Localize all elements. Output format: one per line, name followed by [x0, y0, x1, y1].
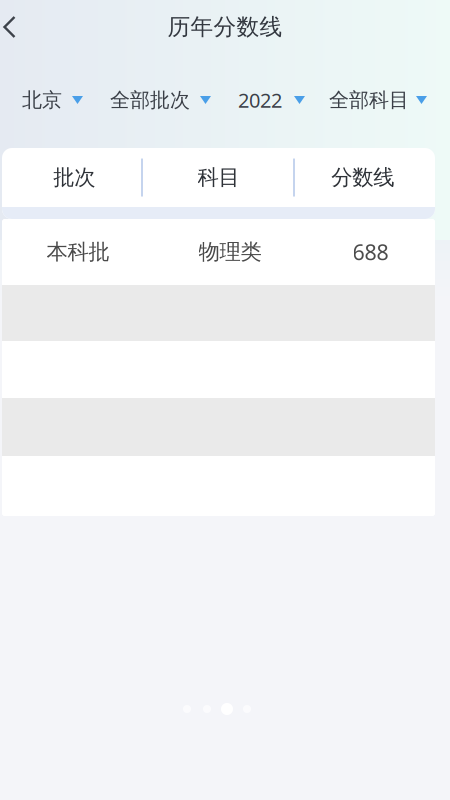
button[interactable]: 全部科目: [329, 78, 427, 122]
staticText: 全部批次: [110, 88, 190, 112]
button[interactable]: Back: [0, 0, 44, 54]
button[interactable]: 2022: [238, 78, 305, 122]
staticText: 科目: [197, 164, 239, 191]
staticText: 688: [352, 238, 388, 266]
button[interactable]: 全部批次: [110, 78, 211, 122]
button[interactable]: 北京: [22, 78, 83, 122]
staticText: 本科批: [46, 239, 109, 265]
staticText: 批次: [53, 164, 95, 191]
staticText: 历年分数线: [167, 13, 282, 41]
staticText: 全部科目: [329, 88, 409, 112]
staticText: 分数线: [331, 164, 394, 191]
staticText: 北京: [22, 88, 62, 112]
staticText: 2022: [238, 87, 282, 113]
staticText: 物理类: [198, 239, 261, 265]
